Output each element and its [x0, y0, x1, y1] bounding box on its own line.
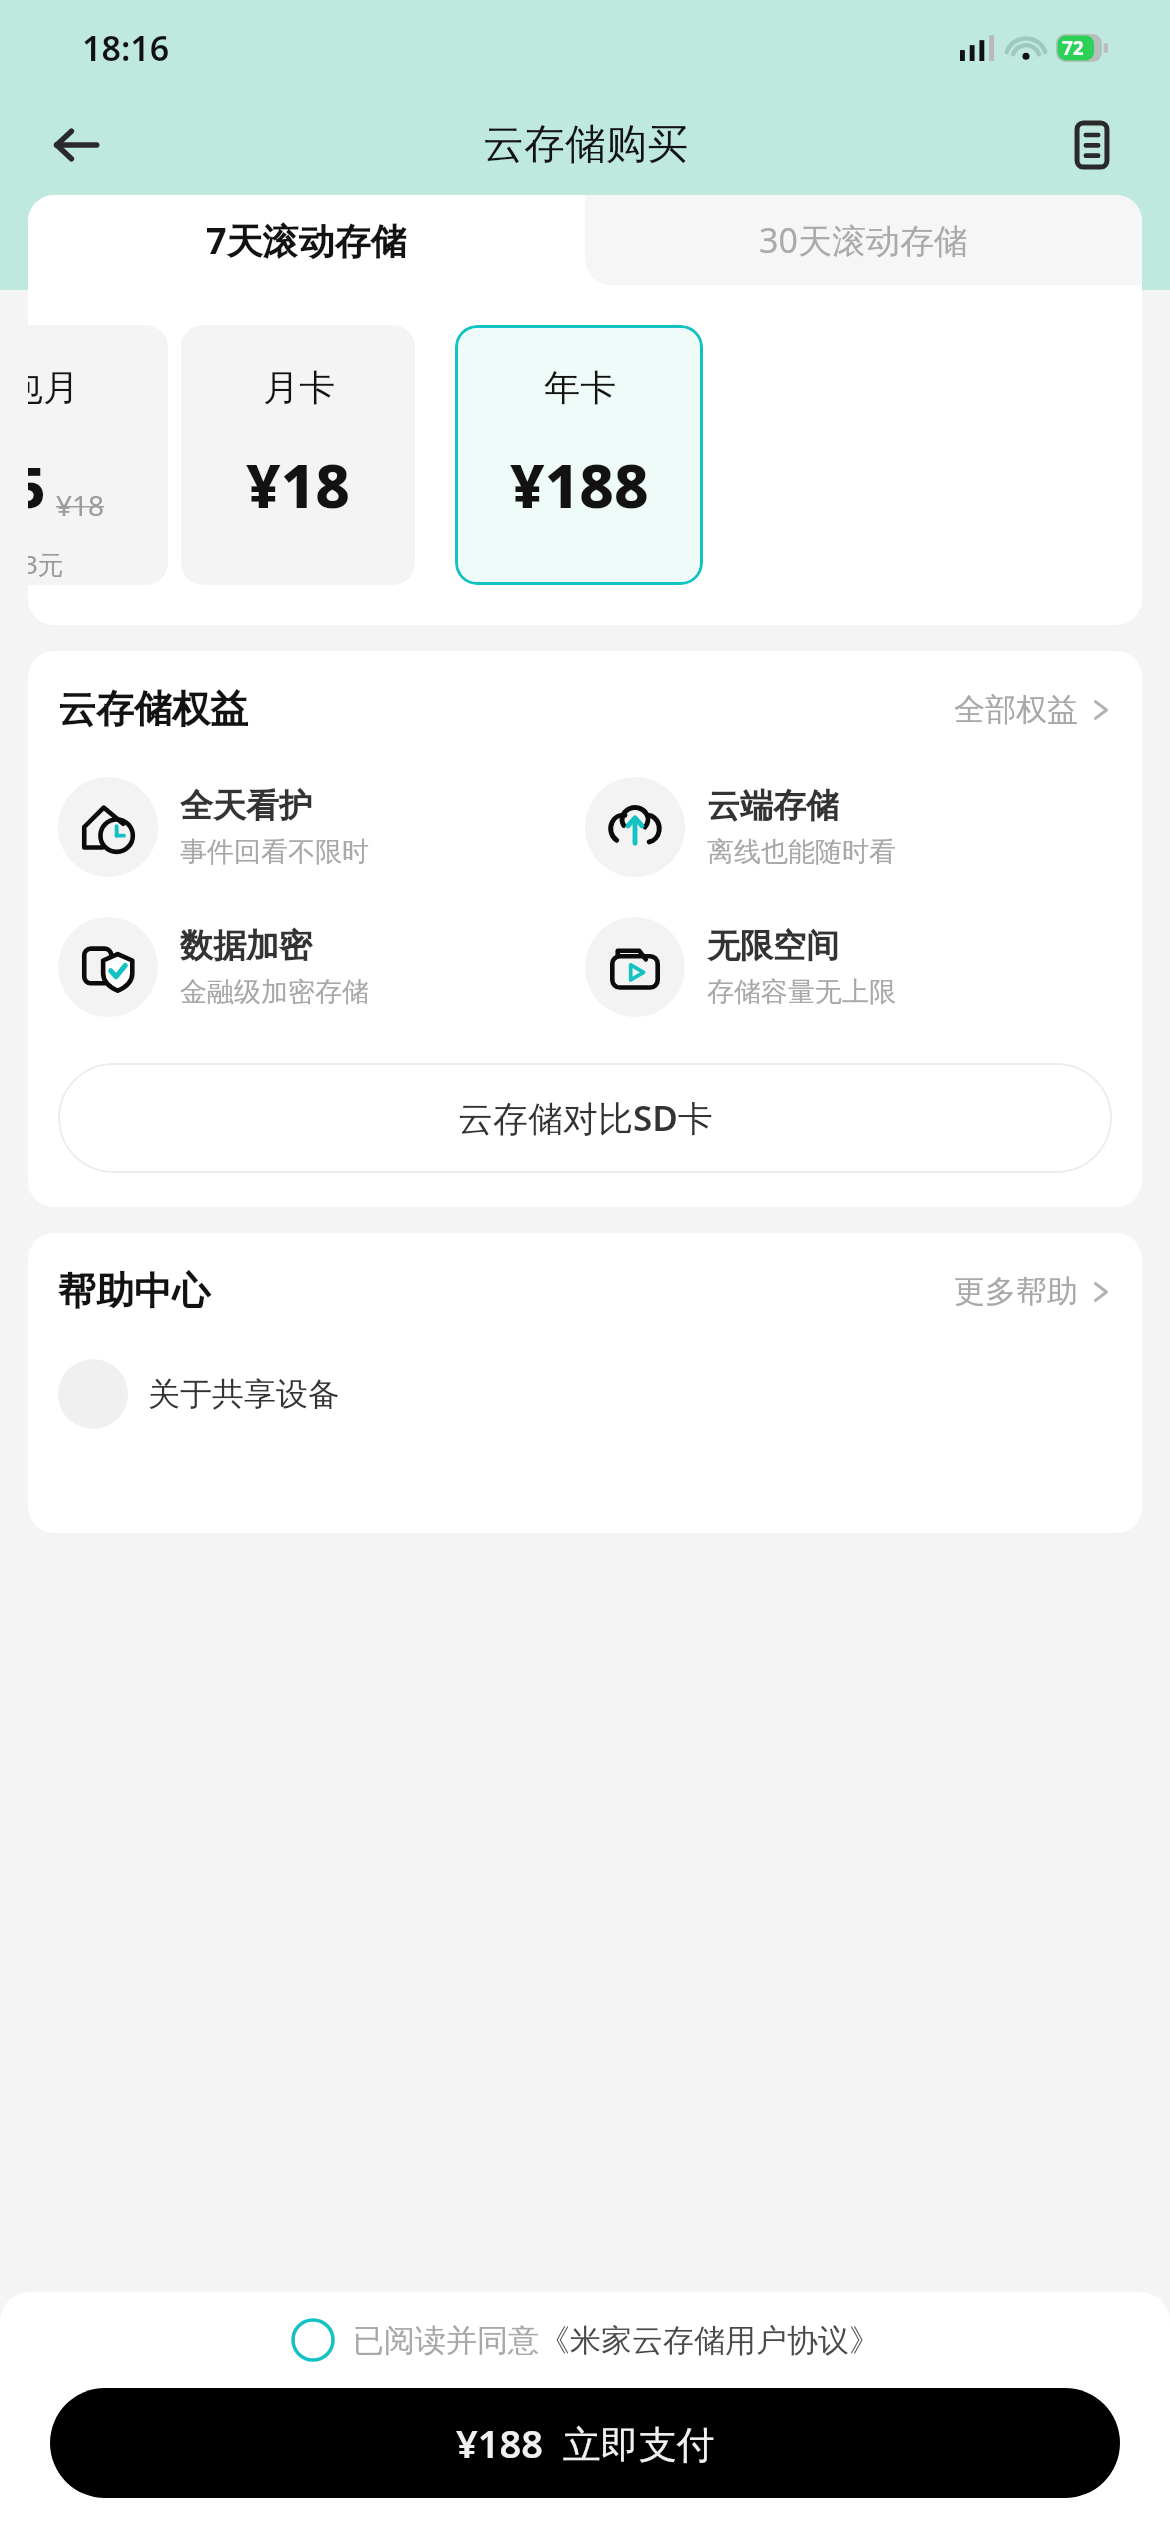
staticText: 云存储对比SD卡	[458, 1094, 713, 1142]
staticText: 30天滚动存储	[759, 217, 968, 263]
staticText: 无限空间	[707, 925, 839, 967]
staticText: 更多帮助	[954, 1272, 1078, 1311]
staticText: ¥188 立即支付	[456, 2417, 715, 2469]
button[interactable]: Back	[40, 109, 112, 181]
staticText: 云存储购买	[483, 119, 688, 171]
staticText: 包月	[28, 365, 79, 410]
staticText: 18:16	[82, 25, 170, 71]
button[interactable]: 已阅读并同意	[291, 2318, 880, 2362]
staticText: ¥5	[28, 448, 46, 524]
staticText: 离线也能随时看	[707, 835, 896, 869]
staticText: ¥188	[510, 444, 649, 526]
staticText: 《米家云存储用户协议》	[539, 2321, 880, 2360]
button[interactable]: Order list	[1056, 109, 1128, 181]
button[interactable]: 月卡	[181, 325, 415, 585]
button[interactable]: 7天滚动存储	[28, 195, 585, 285]
staticText: 已阅读并同意	[353, 2321, 539, 2360]
button[interactable]: 云端存储	[585, 777, 1112, 877]
staticText: 3元	[28, 546, 64, 582]
button[interactable]: 年卡	[455, 325, 703, 585]
staticText: 关于共享设备	[148, 1374, 340, 1414]
staticText: 事件回看不限时	[180, 835, 369, 869]
staticText: 7天滚动存储	[206, 216, 407, 265]
staticText: 存储容量无上限	[707, 975, 896, 1009]
staticText: 年卡	[544, 365, 616, 410]
button[interactable]: 云存储对比SD卡	[58, 1063, 1112, 1173]
staticText: 全天看护	[180, 785, 312, 827]
button[interactable]: 全部权益	[954, 690, 1112, 729]
button[interactable]: 数据加密	[58, 917, 585, 1017]
button[interactable]: 30天滚动存储	[585, 195, 1142, 285]
button[interactable]: ¥188 立即支付	[50, 2388, 1120, 2498]
staticText: 云存储权益	[58, 685, 248, 733]
staticText: 金融级加密存储	[180, 975, 369, 1009]
staticText: 数据加密	[180, 925, 312, 967]
button[interactable]: 全天看护	[58, 777, 585, 877]
button[interactable]: 无限空间	[585, 917, 1112, 1017]
staticText: 72	[1062, 35, 1084, 61]
staticText: 全部权益	[954, 690, 1078, 729]
staticText: 月卡	[263, 365, 335, 410]
button[interactable]: 更多帮助	[954, 1272, 1112, 1311]
staticText: ¥18	[246, 444, 351, 526]
staticText: ¥18	[56, 486, 105, 524]
staticText: 云端存储	[707, 785, 839, 827]
button[interactable]: 包月	[28, 325, 168, 585]
staticText: 帮助中心	[58, 1267, 210, 1315]
